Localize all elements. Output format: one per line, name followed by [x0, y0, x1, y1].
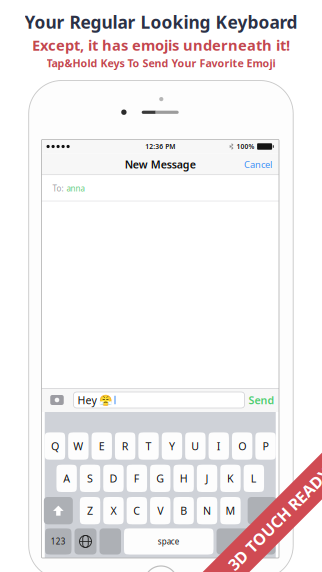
button[interactable]: D: [103, 465, 124, 492]
button[interactable]: Delete: [248, 497, 277, 524]
button[interactable]: space: [124, 528, 213, 554]
staticText: Y: [169, 439, 175, 453]
staticText: H: [180, 471, 188, 485]
staticText: M: [225, 504, 235, 518]
button[interactable]: R: [115, 432, 135, 460]
button[interactable]: H: [173, 465, 194, 492]
button[interactable]: S: [80, 465, 100, 492]
staticText: G: [156, 471, 164, 485]
button[interactable]: X: [103, 497, 124, 524]
staticText: C: [133, 504, 140, 518]
staticText: B: [180, 504, 187, 518]
button[interactable]: A: [56, 465, 77, 492]
button[interactable]: Q: [45, 432, 65, 460]
staticText: Q: [51, 439, 59, 453]
staticText: Except, it has emojis underneath it!: [32, 35, 290, 55]
staticText: O: [238, 439, 246, 453]
button[interactable]: Return: [216, 528, 275, 554]
staticText: J: [205, 471, 208, 485]
button[interactable]: L: [244, 465, 264, 492]
staticText: 3D TOUCH READY: [210, 508, 322, 530]
staticText: N: [203, 504, 211, 518]
staticText: K: [227, 471, 234, 485]
button[interactable]: 123: [45, 528, 71, 554]
staticText: X: [110, 504, 116, 518]
staticText: anna: [66, 183, 84, 194]
staticText: Cancel: [244, 158, 272, 171]
button[interactable]: K: [220, 465, 241, 492]
staticText: To:: [52, 183, 63, 194]
staticText: Hey: [77, 393, 96, 407]
staticText: space: [158, 536, 180, 547]
button[interactable]: P: [255, 432, 276, 460]
staticText: R: [122, 439, 129, 453]
button[interactable]: Shift: [44, 497, 73, 524]
button[interactable]: Cancel: [237, 153, 279, 175]
button[interactable]: Y: [162, 432, 182, 460]
staticText: Tap&Hold Keys To Send Your Favorite Emoj…: [46, 56, 275, 70]
staticText: U: [191, 439, 199, 453]
button[interactable]: F: [127, 465, 147, 492]
staticText: Z: [87, 504, 93, 518]
staticText: Your Regular Looking Keyboard: [24, 10, 297, 33]
staticText: 123: [51, 536, 66, 547]
button[interactable]: E: [91, 432, 112, 460]
staticText: A: [63, 471, 70, 485]
staticText: E: [99, 439, 105, 453]
staticText: F: [134, 471, 140, 485]
button[interactable]: B: [173, 497, 194, 524]
staticText: V: [157, 504, 163, 518]
button[interactable]: O: [232, 432, 252, 460]
button[interactable]: V: [150, 497, 170, 524]
button[interactable]: Camera: [50, 393, 64, 406]
button[interactable]: J: [197, 465, 217, 492]
button[interactable]: U: [185, 432, 205, 460]
button[interactable]: G: [150, 465, 170, 492]
staticText: L: [251, 471, 257, 485]
button[interactable]: M: [220, 497, 241, 524]
staticText: 😤: [99, 394, 112, 406]
button[interactable]: N: [197, 497, 217, 524]
button[interactable]: I: [209, 432, 229, 460]
staticText: S: [87, 471, 93, 485]
staticText: 12:36 PM: [145, 142, 175, 151]
button[interactable]: W: [68, 432, 88, 460]
staticText: Send: [248, 393, 274, 407]
staticText: 100%: [237, 142, 255, 151]
staticText: P: [263, 439, 269, 453]
button[interactable]: C: [127, 497, 147, 524]
button[interactable]: Dictate: [99, 528, 121, 554]
button[interactable]: Z: [80, 497, 100, 524]
staticText: New Message: [125, 157, 196, 171]
staticText: D: [109, 471, 117, 485]
staticText: I: [217, 439, 221, 453]
button[interactable]: Send: [244, 389, 278, 411]
staticText: T: [145, 439, 151, 453]
button[interactable]: Switch keyboard: [74, 528, 96, 554]
button[interactable]: T: [138, 432, 159, 460]
staticText: W: [73, 439, 83, 453]
